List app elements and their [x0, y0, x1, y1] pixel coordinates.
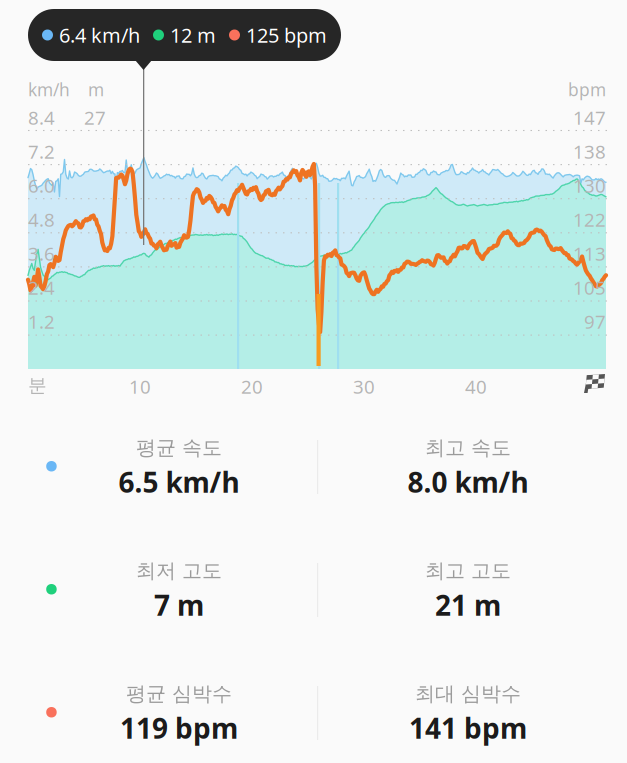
staticText: 1.2: [28, 309, 55, 334]
button[interactable]: 평균 속도: [0, 415, 627, 538]
staticText: 8.4: [28, 105, 55, 130]
staticText: 최고 고도: [425, 559, 511, 583]
staticText: 7 m: [154, 586, 204, 623]
button[interactable]: 최저 고도: [0, 538, 627, 661]
staticText: 평균 심박수: [126, 682, 232, 706]
staticText: 105: [573, 275, 606, 300]
staticText: 119 bpm: [120, 709, 238, 746]
staticText: 6.5 km/h: [118, 463, 239, 500]
staticText: 8.0 km/h: [407, 463, 528, 500]
staticText: 97: [584, 309, 606, 334]
staticText: km/h: [28, 78, 70, 101]
staticText: 20: [241, 374, 263, 399]
staticText: 27: [84, 105, 106, 130]
staticText: 21 m: [435, 586, 501, 623]
staticText: 30: [353, 374, 375, 399]
staticText: 138: [573, 139, 606, 164]
staticText: 147: [573, 105, 606, 130]
staticText: 최고 속도: [425, 436, 511, 460]
staticText: 125 bpm: [246, 22, 327, 48]
staticText: 4.8: [28, 207, 55, 232]
staticText: 6.0: [28, 173, 55, 198]
staticText: 분: [28, 374, 47, 397]
staticText: 40: [465, 374, 487, 399]
staticText: 3.6: [28, 241, 55, 266]
staticText: 10: [129, 374, 151, 399]
staticText: 6.4 km/h: [59, 22, 140, 48]
staticText: 122: [573, 207, 606, 232]
button[interactable]: 평균 심박수: [0, 661, 627, 763]
staticText: 최저 고도: [136, 559, 222, 583]
staticText: 141 bpm: [409, 709, 527, 746]
staticText: 12 m: [170, 22, 216, 48]
staticText: m: [88, 78, 104, 101]
staticText: bpm: [568, 78, 606, 101]
staticText: 평균 속도: [136, 436, 222, 460]
staticText: 2.4: [28, 275, 55, 300]
staticText: 130: [573, 173, 606, 198]
staticText: 7.2: [28, 139, 55, 164]
staticText: 113: [573, 241, 606, 266]
staticText: 최대 심박수: [415, 682, 521, 706]
